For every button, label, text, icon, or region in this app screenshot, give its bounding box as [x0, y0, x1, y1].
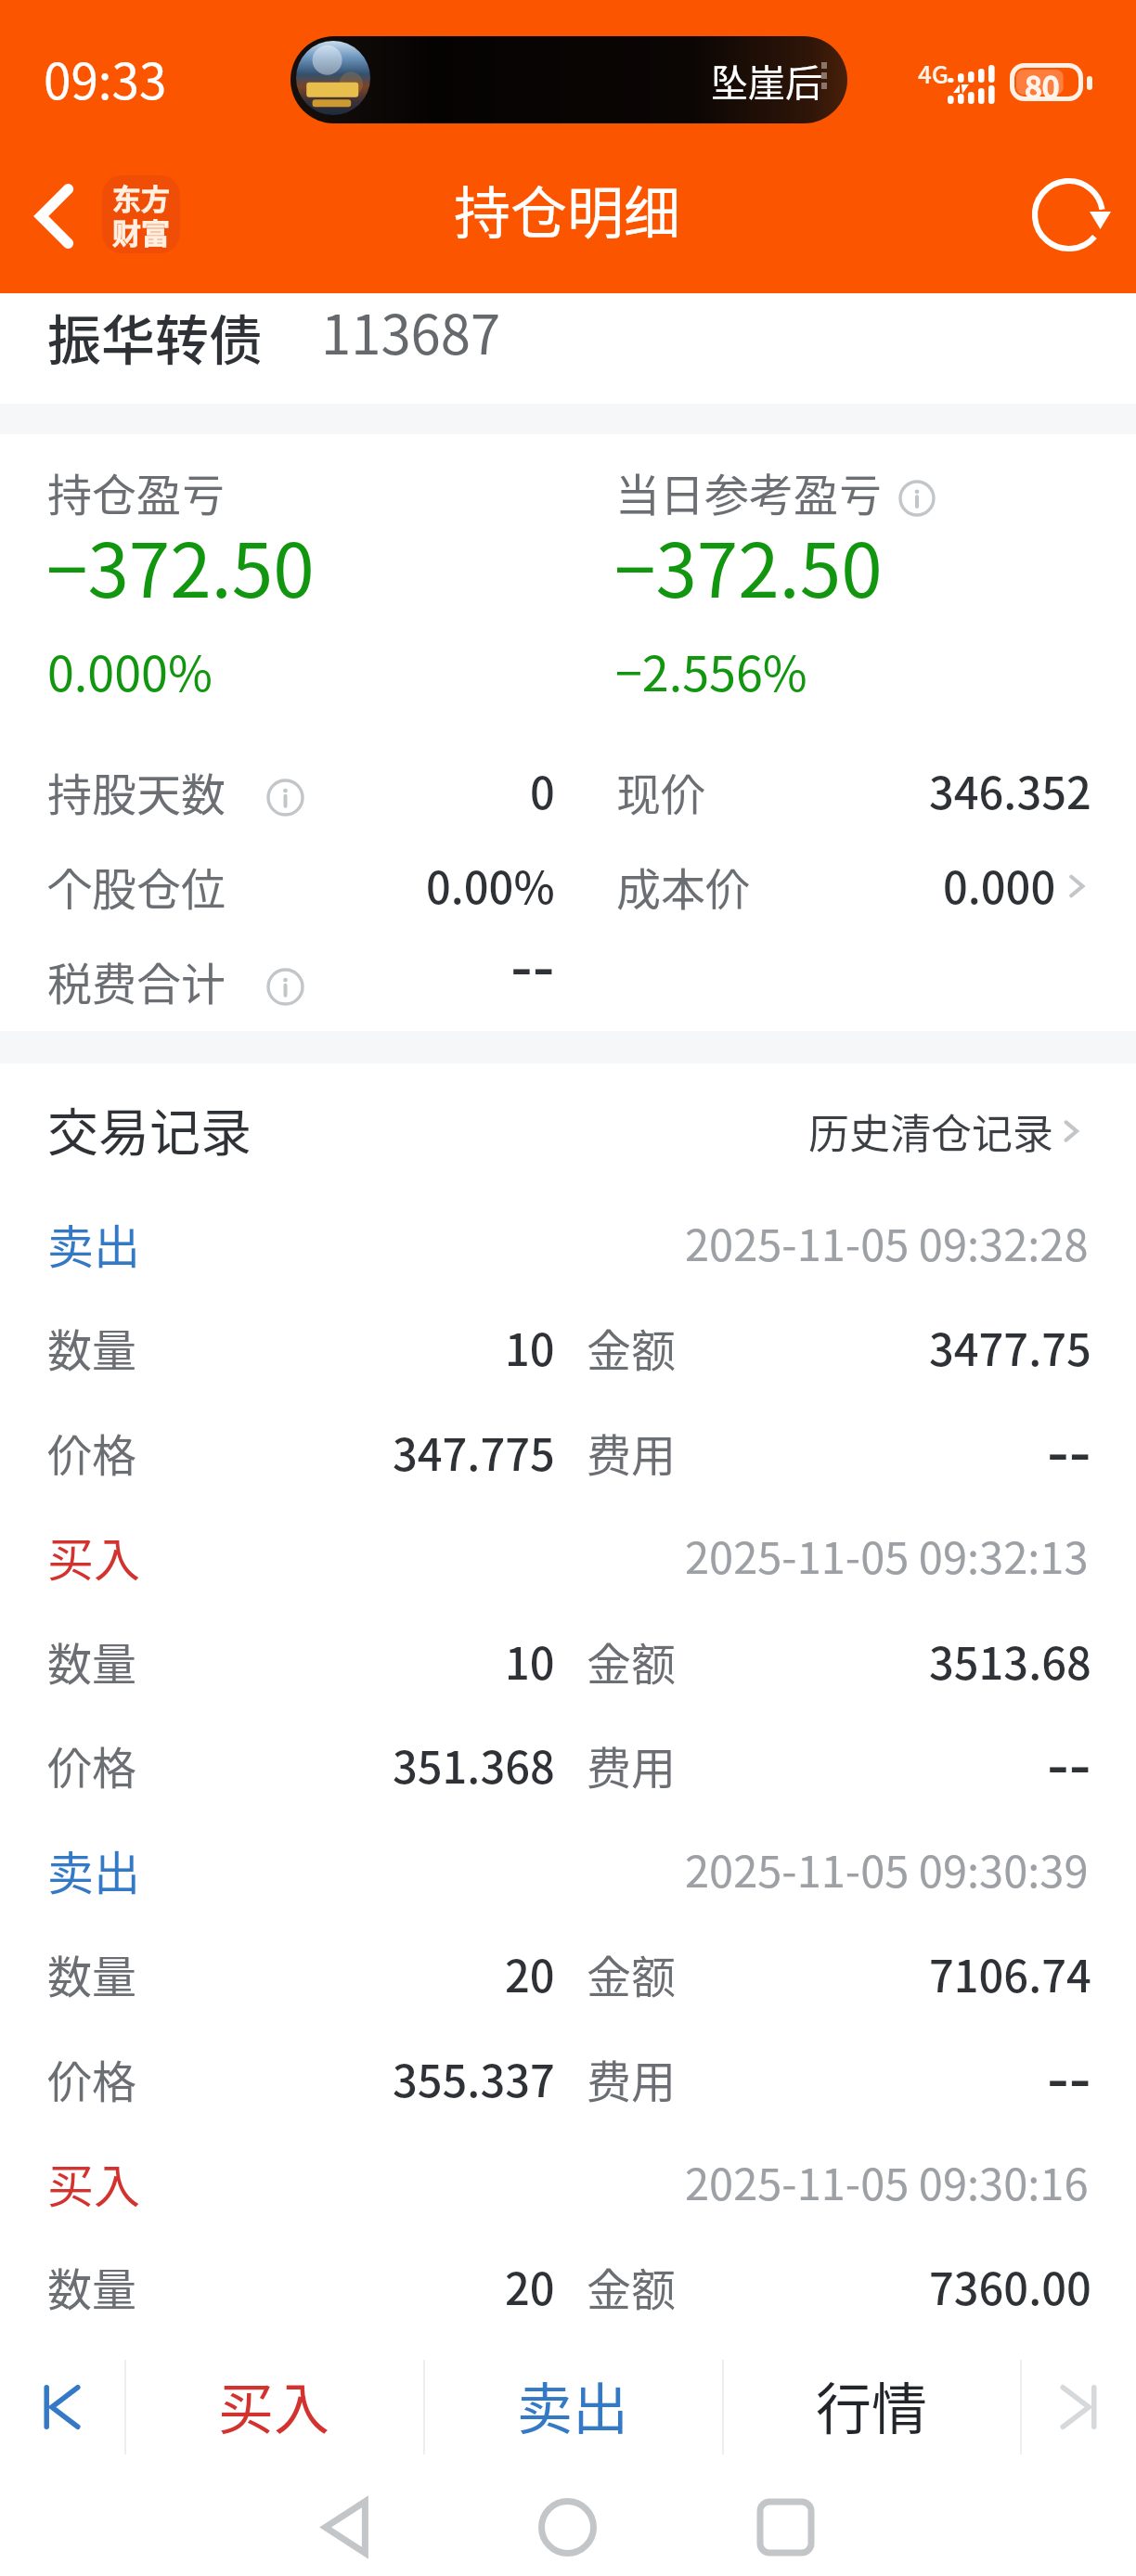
staticText: --: [1047, 1403, 1091, 1493]
staticText: 现价: [616, 759, 706, 824]
button[interactable]: Back: [11, 173, 98, 260]
staticText: 2025-11-05 09:32:28: [685, 1210, 1089, 1273]
staticText: 历史清仓记录: [808, 1101, 1053, 1161]
staticText: 买入: [47, 1523, 140, 1590]
staticText: 10: [505, 1315, 555, 1378]
staticText: 7360.00: [929, 2254, 1091, 2317]
staticText: 数量: [47, 1629, 137, 1694]
staticText: 东方 财富: [112, 176, 170, 252]
button[interactable]: Refresh: [1023, 173, 1119, 269]
staticText: 个股仓位: [47, 854, 226, 919]
staticText: 20: [505, 1941, 555, 2004]
staticText: 2025-11-05 09:32:13: [685, 1523, 1089, 1586]
staticText: 税费合计: [47, 948, 226, 1013]
staticText: 3513.68: [929, 1629, 1091, 1692]
staticText: 113687: [321, 292, 501, 370]
staticText: 09:33: [44, 43, 167, 114]
staticText: --: [1047, 1716, 1091, 1806]
staticText: 交易记录: [47, 1091, 252, 1166]
staticText: 行情: [816, 2364, 927, 2445]
staticText: 持仓盈亏: [47, 459, 226, 524]
staticText: 费用: [587, 1732, 677, 1797]
staticText: −2.556%: [615, 636, 807, 705]
staticText: 0.00%: [426, 853, 555, 916]
staticText: 0: [530, 758, 555, 821]
staticText: 347.775: [393, 1420, 555, 1483]
staticText: 20: [505, 2254, 555, 2317]
button[interactable]: 买入: [124, 2348, 423, 2467]
staticText: 成本价: [616, 854, 751, 919]
staticText: 0.000%: [47, 636, 213, 705]
button[interactable]: East Money logo: [102, 175, 180, 253]
staticText: 价格: [47, 2046, 137, 2111]
staticText: 振华转债: [47, 298, 264, 376]
staticText: 卖出: [517, 2364, 628, 2445]
staticText: 346.352: [929, 758, 1091, 821]
staticText: 费用: [587, 2046, 677, 2111]
staticText: 买入: [47, 2149, 140, 2216]
staticText: 7106.74: [929, 1941, 1091, 2004]
button[interactable]: Last page: [1020, 2348, 1136, 2467]
button[interactable]: 买入: [0, 1513, 1136, 1616]
staticText: --: [1047, 2029, 1091, 2119]
staticText: 卖出: [47, 1210, 140, 1277]
button[interactable]: 卖出: [423, 2348, 722, 2467]
staticText: 当日参考盈亏: [615, 459, 884, 524]
staticText: 2025-11-05 09:30:16: [685, 2149, 1089, 2212]
staticText: 费用: [587, 1420, 677, 1485]
staticText: −372.50: [46, 511, 315, 619]
staticText: 355.337: [393, 2046, 555, 2109]
staticText: 0.000: [943, 853, 1056, 916]
button[interactable]: First page: [0, 2348, 124, 2467]
staticText: 2025-11-05 09:30:39: [685, 1836, 1089, 1900]
staticText: 金额: [587, 1941, 677, 2006]
staticText: 持仓明细: [454, 168, 681, 250]
staticText: 4G: [918, 56, 949, 91]
staticText: 坠崖后: [711, 54, 822, 108]
staticText: 卖出: [47, 1836, 140, 1903]
button[interactable]: 买入: [0, 2139, 1136, 2243]
staticText: 持股天数: [47, 759, 226, 824]
button[interactable]: 卖出: [0, 1826, 1136, 1930]
staticText: 3477.75: [929, 1315, 1091, 1378]
button[interactable]: 行情: [722, 2348, 1020, 2467]
button[interactable]: Home: [516, 2476, 618, 2576]
staticText: 80: [1025, 63, 1060, 101]
staticText: 数量: [47, 2254, 137, 2319]
button[interactable]: Recents: [734, 2476, 836, 2576]
staticText: 金额: [587, 2254, 677, 2319]
button[interactable]: 卖出: [0, 1200, 1136, 1304]
staticText: 金额: [587, 1315, 677, 1380]
staticText: 数量: [47, 1315, 137, 1380]
staticText: −372.50: [614, 511, 883, 619]
staticText: 价格: [47, 1420, 137, 1485]
staticText: 价格: [47, 1732, 137, 1797]
staticText: 351.368: [393, 1732, 555, 1796]
staticText: 金额: [587, 1629, 677, 1694]
staticText: 10: [505, 1629, 555, 1692]
button[interactable]: Back: [296, 2476, 398, 2576]
staticText: --: [510, 918, 555, 1008]
button[interactable]: 历史清仓记录: [808, 1101, 1085, 1161]
staticText: 数量: [47, 1941, 137, 2006]
staticText: 买入: [218, 2364, 329, 2445]
